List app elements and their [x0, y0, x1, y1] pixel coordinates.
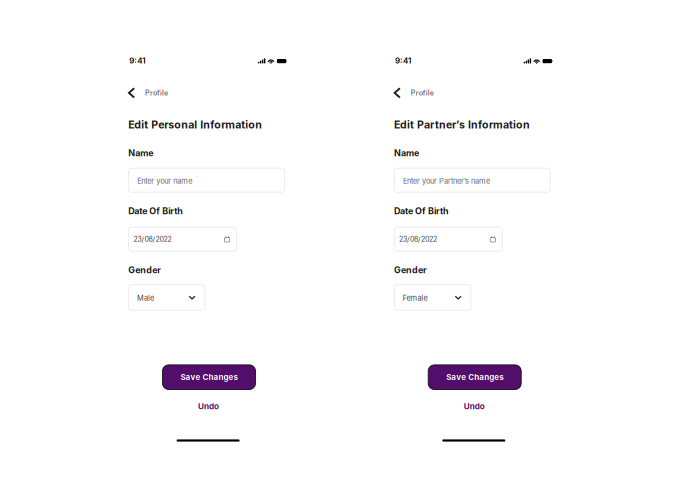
staticText: Date Of Birth: [128, 206, 183, 216]
staticText: Male: [137, 294, 154, 303]
button[interactable]: Back to Profile: [128, 87, 173, 100]
staticText: 23/08/2022: [133, 235, 171, 243]
staticText: Save Changes: [180, 372, 237, 382]
staticText: Date Of Birth: [394, 206, 449, 216]
button[interactable]: Save Changes: [428, 365, 521, 389]
staticText: Enter your name: [137, 176, 192, 185]
button[interactable]: Enter your name: [129, 168, 285, 192]
staticText: Edit Partner’s Information: [394, 118, 530, 131]
staticText: Undo: [464, 401, 485, 411]
button[interactable]: Back to Profile: [394, 87, 439, 100]
staticText: Profile: [411, 88, 434, 97]
staticText: 9:41: [395, 56, 411, 65]
staticText: Gender: [394, 265, 427, 275]
staticText: Name: [128, 148, 153, 158]
staticText: Save Changes: [446, 372, 503, 382]
staticText: Undo: [198, 401, 219, 411]
staticText: Female: [403, 294, 428, 303]
staticText: 23/08/2022: [399, 235, 437, 243]
button[interactable]: Undo: [189, 400, 229, 412]
button[interactable]: Female: [394, 285, 471, 310]
button[interactable]: 23/08/2022: [394, 227, 502, 251]
button[interactable]: Save Changes: [162, 365, 255, 389]
button[interactable]: 23/08/2022: [129, 227, 237, 251]
staticText: Enter your Partner’s name: [403, 176, 490, 185]
button[interactable]: Undo: [454, 400, 494, 412]
staticText: Gender: [128, 265, 161, 275]
staticText: Name: [394, 148, 419, 158]
staticText: Profile: [145, 88, 168, 97]
button[interactable]: Enter your Partner’s name: [394, 168, 550, 192]
button[interactable]: Male: [129, 285, 205, 310]
staticText: 9:41: [129, 56, 145, 65]
staticText: Edit Personal Information: [128, 118, 262, 131]
